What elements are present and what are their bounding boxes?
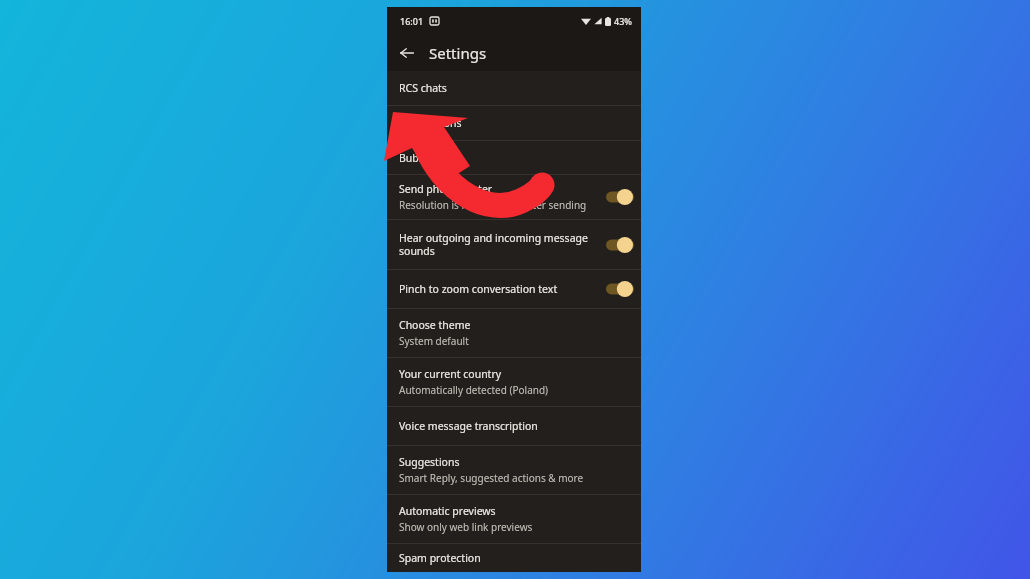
- button[interactable]: Send photos faster: [387, 175, 641, 219]
- staticText: 16:01: [400, 15, 424, 27]
- staticText: Automatically detected (Poland): [399, 383, 549, 397]
- button[interactable]: Notifications: [387, 106, 641, 140]
- button[interactable]: Pinch to zoom conversation text: [387, 270, 641, 308]
- staticText: Spam protection: [399, 551, 481, 565]
- button[interactable]: Bubbles: [387, 141, 641, 174]
- button[interactable]: Toggle Pinch to zoom conversation text: [606, 280, 634, 298]
- staticText: Bubbles: [399, 151, 439, 165]
- staticText: 43%: [614, 15, 632, 27]
- button[interactable]: Spam protection: [387, 544, 641, 572]
- staticText: Notifications: [399, 116, 462, 130]
- staticText: Smart Reply, suggested actions & more: [399, 471, 584, 485]
- button[interactable]: Suggestions: [387, 446, 641, 494]
- button[interactable]: Your current country: [387, 358, 641, 406]
- button[interactable]: RCS chats: [387, 71, 641, 105]
- button[interactable]: Choose theme: [387, 309, 641, 357]
- staticText: Resolution is reduced for faster sending: [399, 198, 587, 212]
- button[interactable]: Hear outgoing and incoming message sound…: [387, 220, 641, 269]
- staticText: Suggestions: [399, 455, 460, 469]
- staticText: System default: [399, 334, 469, 348]
- button[interactable]: Toggle Hear outgoing and incoming messag…: [606, 236, 634, 254]
- button[interactable]: Back: [392, 38, 422, 68]
- staticText: Pinch to zoom conversation text: [399, 282, 558, 296]
- staticText: Settings: [429, 43, 487, 63]
- staticText: Automatic previews: [399, 504, 496, 518]
- staticText: Your current country: [399, 367, 502, 381]
- staticText: Choose theme: [399, 318, 471, 332]
- staticText: Voice message transcription: [399, 419, 538, 433]
- staticText: Hear outgoing and incoming message sound…: [399, 231, 600, 258]
- staticText: RCS chats: [399, 81, 447, 95]
- button[interactable]: Automatic previews: [387, 495, 641, 543]
- staticText: Show only web link previews: [399, 520, 533, 534]
- button[interactable]: Toggle Send photos faster: [606, 188, 634, 206]
- button[interactable]: Voice message transcription: [387, 407, 641, 445]
- staticText: Send photos faster: [399, 182, 493, 196]
